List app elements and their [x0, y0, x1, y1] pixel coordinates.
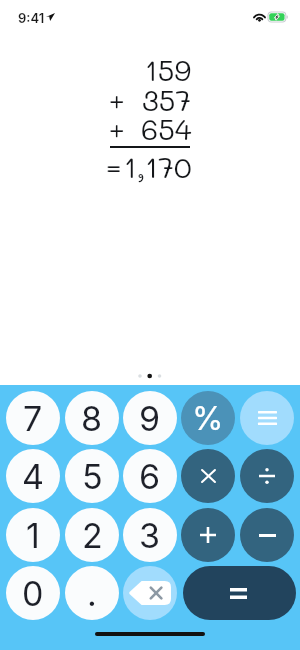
staticText: %	[192, 399, 224, 438]
button[interactable]: Menu	[240, 391, 294, 445]
button[interactable]: Subtract	[240, 508, 294, 562]
button[interactable]: Equals	[183, 566, 296, 620]
button[interactable]: 1	[6, 508, 60, 562]
button[interactable]: Add	[181, 508, 235, 562]
button[interactable]: Multiply	[181, 449, 235, 503]
button[interactable]: 2	[65, 508, 119, 562]
button[interactable]: Delete	[123, 566, 177, 620]
button[interactable]: 8	[65, 391, 119, 445]
button[interactable]: 5	[65, 449, 119, 503]
staticText: 9:41	[18, 10, 45, 26]
staticText: 8	[81, 398, 103, 439]
button[interactable]: 9	[123, 391, 177, 445]
staticText: 654	[141, 110, 192, 147]
staticText: 357	[142, 81, 192, 118]
staticText: 0	[22, 573, 44, 614]
staticText: 6	[139, 456, 161, 497]
staticText: 4	[22, 456, 44, 497]
button[interactable]: 4	[6, 449, 60, 503]
button[interactable]: Divide	[240, 449, 294, 503]
staticText: =	[106, 148, 122, 185]
button[interactable]: 7	[6, 391, 60, 445]
staticText: 159	[145, 51, 192, 88]
button[interactable]: 0	[6, 566, 60, 620]
staticText: 7	[23, 398, 43, 439]
staticText: 3	[139, 515, 161, 556]
staticText: .	[87, 573, 97, 614]
button[interactable]: 3	[123, 508, 177, 562]
button[interactable]: .	[65, 566, 119, 620]
staticText: 1	[26, 515, 40, 556]
staticText: 2	[82, 515, 103, 556]
staticText: +	[109, 81, 125, 118]
staticText: 1,170	[124, 148, 192, 185]
staticText: 9	[139, 398, 161, 439]
button[interactable]: 6	[123, 449, 177, 503]
staticText: +	[109, 110, 125, 147]
staticText: 5	[82, 456, 103, 497]
button[interactable]: %	[181, 391, 235, 445]
